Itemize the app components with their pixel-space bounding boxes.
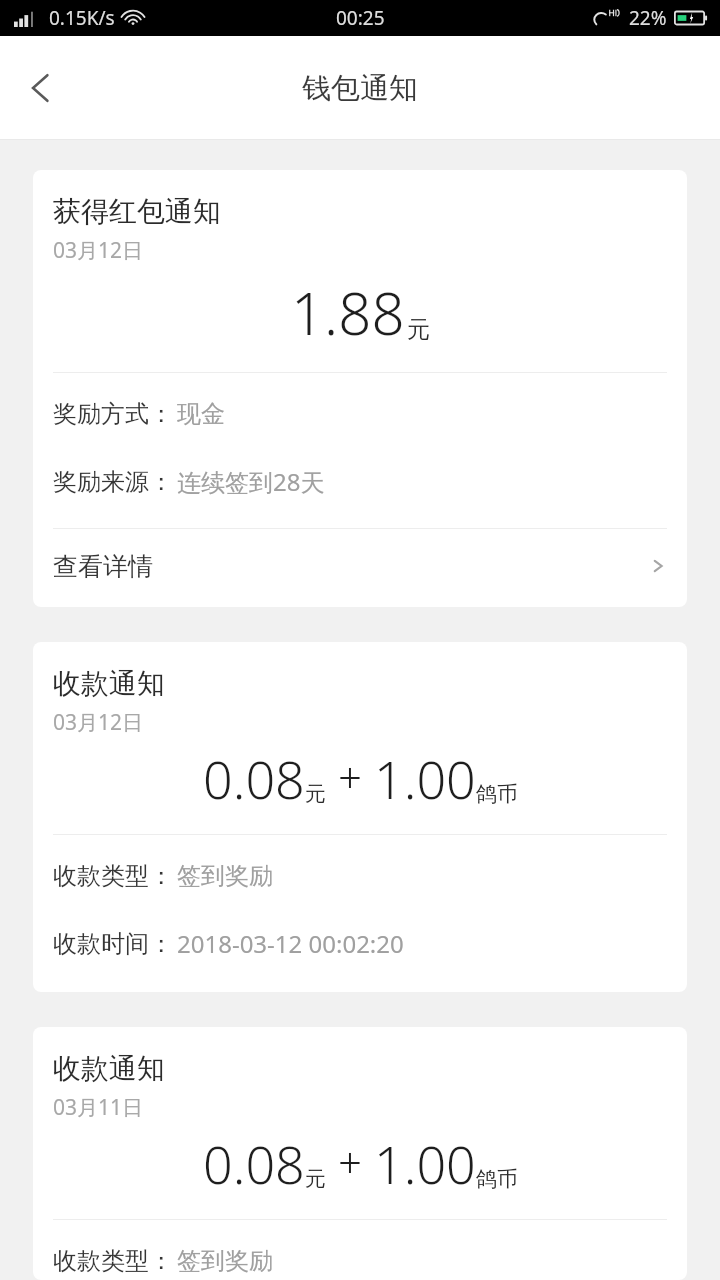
staticText: 鸽币 (476, 781, 518, 807)
staticText: 收款通知 (53, 666, 165, 701)
staticText: 现金 (177, 399, 225, 429)
button[interactable]: 收款通知 (33, 642, 687, 992)
staticText: 查看详情 (53, 551, 153, 582)
staticText: 奖励来源： (53, 467, 173, 497)
button[interactable]: 收款通知 (33, 1027, 687, 1280)
staticText: + (338, 748, 362, 805)
button[interactable]: 获得红包通知 (33, 170, 687, 607)
staticText: 获得红包通知 (53, 194, 221, 229)
staticText: 22% (629, 5, 667, 31)
staticText: 收款类型： (53, 1246, 173, 1276)
staticText: 连续签到28天 (177, 465, 325, 498)
staticText: 0.08 (203, 743, 305, 814)
staticText: 03月12日 (53, 708, 144, 737)
staticText: 收款时间： (53, 929, 173, 959)
staticText: 1.88 (291, 273, 405, 352)
staticText: + (338, 1133, 362, 1190)
staticText: 收款类型： (53, 861, 173, 891)
staticText: 2018-03-12 00:02:20 (177, 927, 404, 960)
staticText: 鸽币 (476, 1166, 518, 1192)
button[interactable]: 查看详情 (33, 529, 687, 603)
staticText: 签到奖励 (177, 1246, 273, 1276)
staticText: 元 (407, 315, 430, 344)
staticText: 元 (305, 781, 326, 807)
staticText: 钱包通知 (302, 70, 418, 107)
staticText: 奖励方式： (53, 399, 173, 429)
staticText: 0.08 (203, 1128, 305, 1199)
staticText: 00:25 (336, 5, 385, 31)
staticText: 签到奖励 (177, 861, 273, 891)
staticText: 1.00 (374, 743, 476, 814)
staticText: 收款通知 (53, 1051, 165, 1086)
staticText: 1.00 (374, 1128, 476, 1199)
staticText: 元 (305, 1166, 326, 1192)
button[interactable]: Back (8, 55, 74, 121)
staticText: 03月11日 (53, 1093, 144, 1122)
staticText: 0.15K/s (49, 5, 115, 31)
staticText: 03月12日 (53, 236, 144, 265)
